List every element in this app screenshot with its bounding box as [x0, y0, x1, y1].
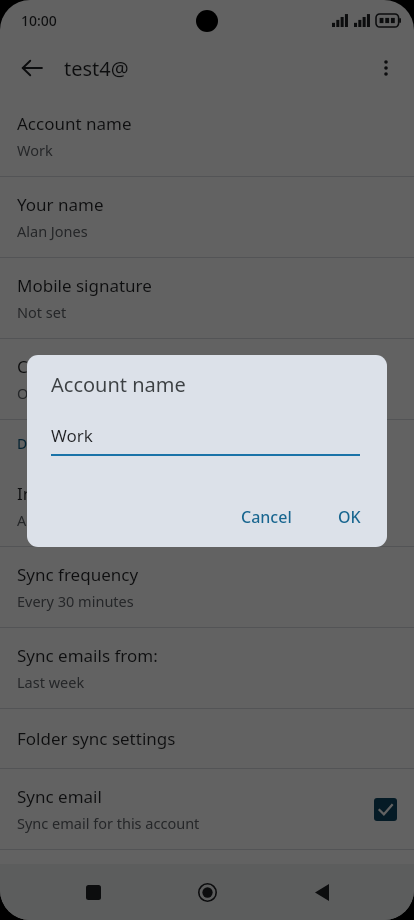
button[interactable]: Recent apps — [71, 870, 115, 914]
staticText: Sync frequency — [17, 563, 139, 586]
staticText: Sync contacts for this account — [17, 889, 220, 909]
button[interactable]: Back — [300, 870, 344, 914]
staticText: OK — [338, 506, 361, 528]
staticText: Cancel — [241, 506, 292, 528]
button[interactable]: Home — [185, 870, 229, 914]
button[interactable]: OK — [326, 497, 373, 537]
staticText: Data usage — [17, 434, 93, 453]
staticText: Inbox check frequency — [17, 482, 197, 505]
staticText: test4@ — [64, 55, 129, 82]
staticText: Mobile signature — [17, 274, 152, 297]
staticText: Account name — [17, 112, 132, 135]
button[interactable]: Toggle Sync email — [374, 798, 397, 821]
staticText: Work — [17, 140, 53, 160]
button[interactable]: Cancel — [229, 497, 304, 537]
button[interactable]: More options — [364, 46, 408, 90]
button[interactable]: Sync contacts — [0, 850, 414, 920]
button[interactable]: Work — [51, 424, 360, 456]
staticText: Automatic (Push) — [17, 510, 133, 530]
button[interactable]: Character set — [0, 339, 414, 419]
staticText: Your name — [17, 193, 104, 216]
staticText: Optional — [17, 383, 76, 403]
button[interactable]: Folder sync settings — [0, 709, 414, 768]
button[interactable]: Back — [10, 46, 54, 90]
staticText: Folder sync settings — [17, 727, 176, 750]
button[interactable]: Inbox check frequency — [0, 466, 414, 546]
staticText: Last week — [17, 672, 85, 692]
staticText: Not set — [17, 302, 67, 322]
staticText: Account name — [51, 371, 186, 398]
button[interactable]: Your name — [0, 177, 414, 257]
staticText: Sync email for this account — [17, 813, 200, 833]
staticText: Sync email — [17, 785, 102, 808]
button[interactable]: Sync email — [0, 769, 414, 849]
button[interactable]: Account name — [0, 96, 414, 176]
button[interactable]: Sync frequency — [0, 547, 414, 627]
button[interactable]: Sync emails from: — [0, 628, 414, 708]
staticText: Work — [51, 424, 93, 447]
staticText: Every 30 minutes — [17, 591, 134, 611]
staticText: Character set — [17, 355, 124, 378]
staticText: Sync emails from: — [17, 644, 158, 667]
staticText: Alan Jones — [17, 221, 88, 241]
button[interactable]: Mobile signature — [0, 258, 414, 338]
staticText: 10:00 — [21, 11, 57, 30]
